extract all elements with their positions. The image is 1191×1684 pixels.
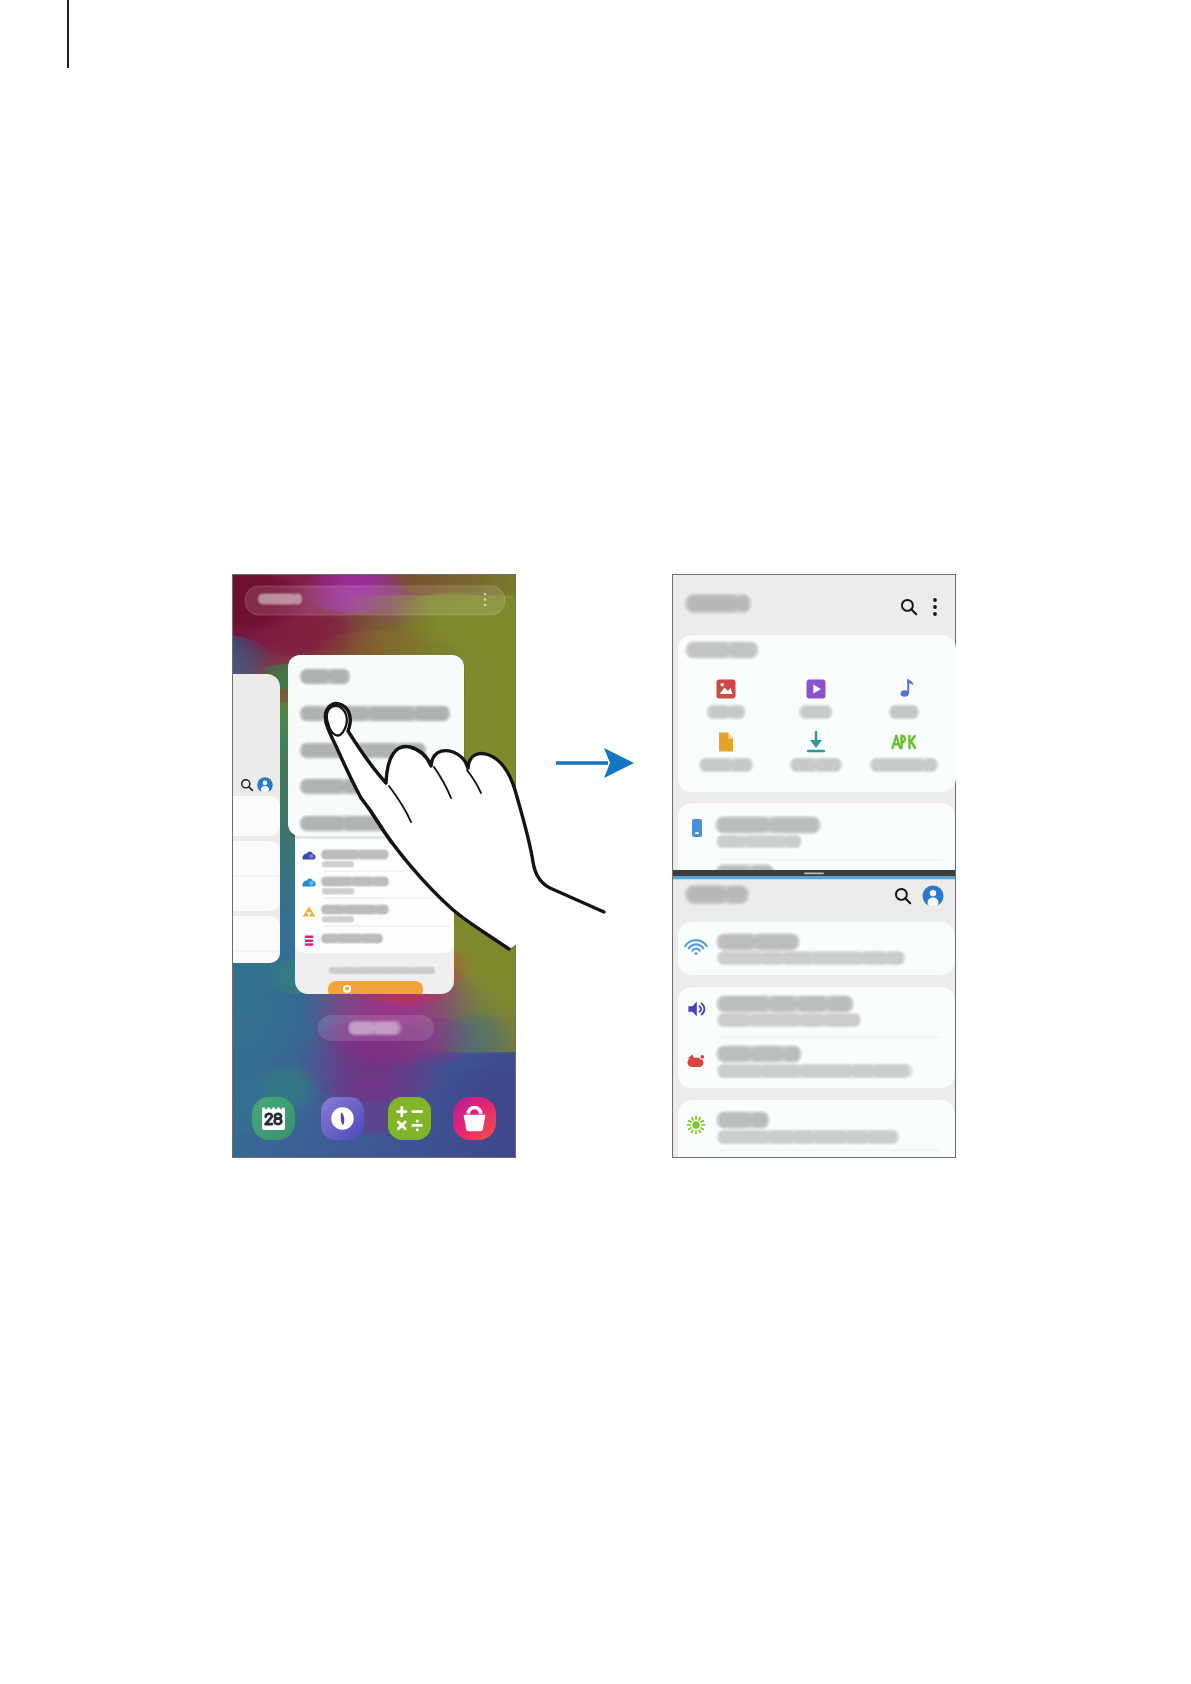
button[interactable]: Notifications [678,1038,955,1088]
button[interactable]: Search [245,586,504,614]
button[interactable]: Account [923,886,945,908]
button[interactable]: Internet [321,1097,364,1140]
button[interactable]: Calculator [388,1097,431,1140]
button[interactable]: More options [928,593,946,621]
button[interactable]: App options menu [288,655,463,838]
button[interactable]: Close all [318,1015,434,1041]
button[interactable]: Galaxy Store [453,1097,496,1140]
button[interactable]: Search [901,599,921,619]
button[interactable]: Sounds and vibration [678,987,955,1037]
button[interactable]: Connections [678,922,955,975]
button[interactable]: Display [678,1100,955,1155]
button[interactable]: Calendar [252,1097,295,1140]
